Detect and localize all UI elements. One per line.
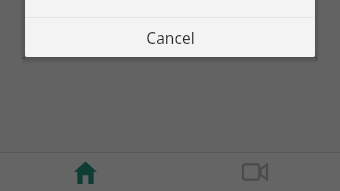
button[interactable]: Cancel xyxy=(25,18,315,57)
button[interactable]: Home xyxy=(0,153,170,191)
staticText: Cancel xyxy=(146,27,195,48)
button[interactable]: Video xyxy=(170,153,340,191)
